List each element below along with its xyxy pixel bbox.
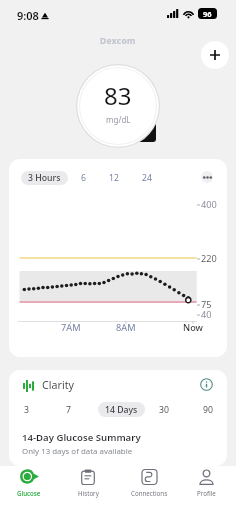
staticText: 14-Day Glucose Summary (22, 431, 141, 444)
button[interactable]: 12 (103, 171, 125, 185)
button[interactable]: 14 Days (98, 402, 145, 417)
button[interactable]: 7 (60, 402, 77, 417)
staticText: 40 (201, 308, 212, 321)
staticText: mg/dL (106, 114, 131, 125)
button[interactable]: Connections (121, 466, 177, 512)
button[interactable]: Information (199, 377, 214, 392)
staticText: Profile (197, 489, 216, 497)
staticText: 8AM (116, 321, 136, 333)
button[interactable]: 90 (197, 402, 219, 417)
staticText: 14 Days (105, 404, 138, 416)
staticText: 3 (24, 404, 29, 416)
staticText: Clarity (42, 378, 74, 393)
staticText: 7AM (61, 321, 81, 333)
button[interactable]: Profile (178, 466, 234, 512)
button[interactable]: 6 (72, 171, 94, 185)
staticText: 400 (201, 198, 217, 211)
staticText: 12 (109, 172, 119, 184)
staticText: History (78, 489, 99, 497)
staticText: 24 (142, 172, 152, 184)
staticText: 90 (203, 404, 213, 416)
staticText: 220 (201, 252, 217, 265)
staticText: 30 (159, 404, 169, 416)
button[interactable]: 24 (136, 171, 158, 185)
button[interactable]: 30 (153, 402, 175, 417)
staticText: 75 (201, 298, 212, 311)
staticText: 96 (203, 9, 212, 19)
staticText: 6 (81, 172, 86, 184)
staticText: Dexcom (100, 35, 136, 47)
staticText: 3 Hours (28, 172, 61, 184)
staticText: Only 13 days of data available (22, 446, 133, 457)
button[interactable]: Add (201, 41, 229, 69)
button[interactable]: 3 (18, 402, 35, 417)
staticText: 83 (104, 79, 132, 112)
staticText: Connections (131, 489, 168, 497)
button[interactable]: History (60, 466, 116, 512)
staticText: Now (183, 321, 203, 333)
staticText: 7 (66, 404, 71, 416)
staticText: Glucose (17, 489, 41, 497)
button[interactable]: 3 Hours (21, 171, 68, 185)
staticText: 9:08 (17, 8, 39, 23)
button[interactable]: More options (201, 171, 213, 183)
button[interactable]: Glucose (1, 466, 57, 512)
button[interactable]: 83 (76, 64, 160, 148)
